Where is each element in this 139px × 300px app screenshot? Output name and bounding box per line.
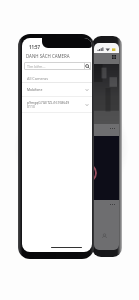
other: Grid view bbox=[112, 55, 116, 59]
other: Search bbox=[84, 62, 91, 70]
staticText: DANH SÁCH CAMERA bbox=[26, 53, 70, 59]
button[interactable]: Mobifone bbox=[22, 83, 92, 96]
other: Account bbox=[101, 233, 108, 240]
staticText: Mobifone bbox=[27, 87, 85, 92]
button[interactable]: Tìm kiếm... bbox=[24, 62, 91, 70]
button[interactable]: All Cameras bbox=[22, 74, 92, 82]
staticText: p9mgqG7GETZLi16768649 0113 bbox=[27, 100, 85, 109]
staticText: 11:57 bbox=[29, 44, 41, 50]
button[interactable]: p9mgqG7GETZLi16768649 0113 bbox=[22, 97, 92, 112]
staticText: Tìm kiếm... bbox=[27, 64, 84, 69]
staticText: All Cameras bbox=[27, 76, 49, 81]
